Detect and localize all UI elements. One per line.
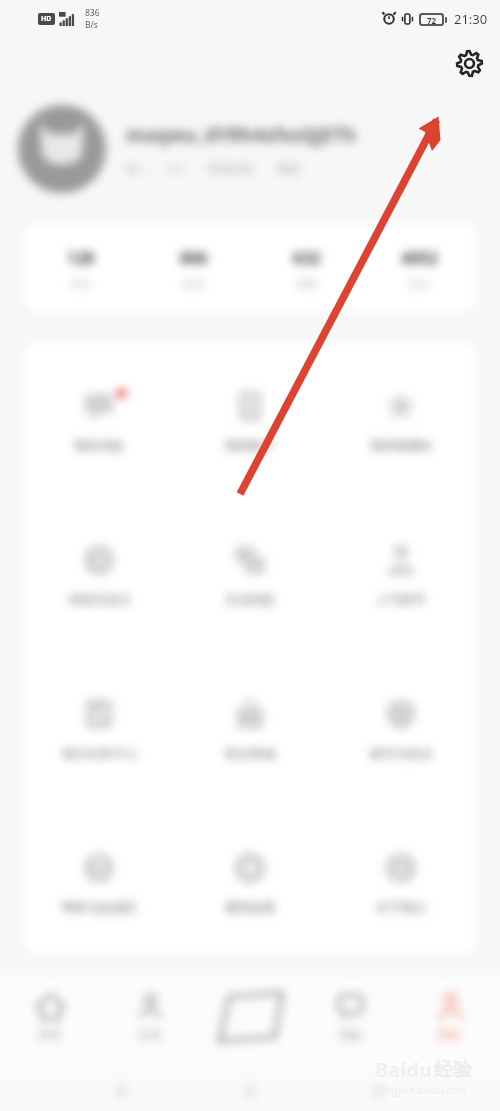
button[interactable]: 806 bbox=[137, 223, 250, 311]
button[interactable]: 我的帖子 bbox=[190, 390, 310, 454]
staticText: 编辑 bbox=[277, 161, 301, 176]
staticText: 经验 bbox=[434, 1058, 472, 1082]
staticText: 我的 bbox=[438, 1027, 462, 1042]
staticText: 21:30 bbox=[454, 10, 488, 28]
staticText: 互动消息 bbox=[225, 592, 275, 608]
staticText: jingyan.baidu.com bbox=[380, 1083, 467, 1097]
staticText: 每日任务中心 bbox=[62, 746, 137, 762]
staticText: 消息 bbox=[338, 1027, 362, 1042]
button[interactable]: 128 bbox=[24, 223, 137, 311]
button[interactable]: 我的收藏夹 bbox=[341, 390, 461, 454]
button[interactable]: 积分商城 bbox=[190, 698, 310, 762]
staticText: 632 bbox=[293, 247, 321, 269]
button[interactable]: 关于我们 bbox=[341, 852, 461, 916]
staticText: 836 bbox=[85, 7, 100, 19]
staticText: 浏览历史记 bbox=[68, 592, 131, 608]
button[interactable]: 浏览历史记 bbox=[39, 544, 159, 608]
staticText: 等级勋章 bbox=[206, 161, 254, 176]
button[interactable]: 我的 bbox=[400, 976, 500, 1071]
staticText: 4052 bbox=[401, 247, 438, 269]
staticText: HD bbox=[41, 14, 52, 24]
button[interactable]: 4052 bbox=[363, 223, 476, 311]
button[interactable]: 我的消息 bbox=[39, 390, 159, 454]
staticText: 人气助手 bbox=[376, 592, 426, 608]
staticText: 通用设置 bbox=[225, 900, 275, 916]
staticText: 我的消息 bbox=[74, 438, 124, 454]
button[interactable]: Avatar bbox=[18, 105, 106, 193]
staticText: 806 bbox=[180, 247, 208, 269]
staticText: B/s bbox=[85, 19, 98, 31]
staticText: 账号与安全 bbox=[370, 746, 433, 762]
button[interactable]: Settings bbox=[446, 40, 492, 86]
button[interactable]: Publish bbox=[200, 976, 300, 1071]
button[interactable]: 互动消息 bbox=[190, 544, 310, 608]
staticText: 我的帖子 bbox=[225, 438, 275, 454]
staticText: 帮助与反馈区 bbox=[62, 900, 137, 916]
button[interactable]: 社区 bbox=[100, 976, 200, 1071]
button[interactable]: 人气助手 bbox=[341, 544, 461, 608]
staticText: 首页 bbox=[38, 1027, 62, 1042]
staticText: 获赞 bbox=[296, 278, 317, 291]
staticText: Baidu bbox=[375, 1056, 432, 1083]
staticText: 72 bbox=[427, 15, 437, 24]
other: Publish bbox=[217, 993, 283, 1043]
staticText: 积分商城 bbox=[225, 746, 275, 762]
button[interactable]: 账号与安全 bbox=[341, 698, 461, 762]
staticText: 关于我们 bbox=[376, 900, 426, 916]
button[interactable]: 每日任务中心 bbox=[39, 698, 159, 762]
staticText: 社区 bbox=[138, 1027, 162, 1042]
staticText: 我的收藏夹 bbox=[370, 438, 433, 454]
button[interactable]: 消息 bbox=[300, 976, 400, 1071]
staticText: ID： bbox=[126, 160, 151, 176]
staticText: maqwu_dYRh4sfxsQjETh bbox=[126, 122, 356, 148]
button[interactable]: 通用设置 bbox=[190, 852, 310, 916]
button[interactable]: 首页 bbox=[0, 976, 100, 1071]
button[interactable]: 632 bbox=[250, 223, 363, 311]
staticText: 128 bbox=[67, 247, 95, 269]
button[interactable]: 帮助与反馈区 bbox=[39, 852, 159, 916]
